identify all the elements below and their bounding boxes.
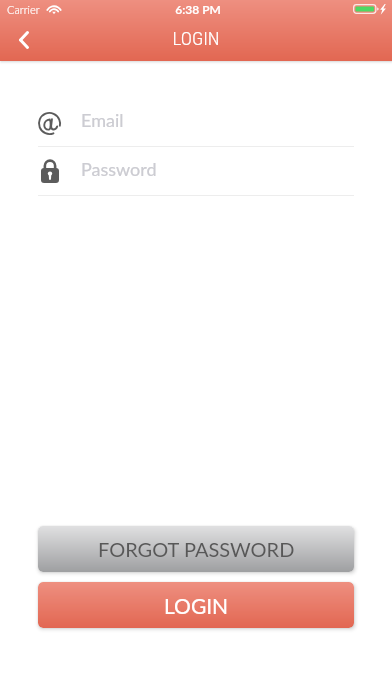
staticText: Password — [81, 158, 157, 180]
button[interactable]: Back — [4, 21, 44, 59]
staticText: 6:38 PM — [2, 2, 392, 16]
staticText: LOGIN — [0, 27, 392, 49]
button[interactable]: Email — [38, 108, 354, 147]
staticText: FORGOT PASSWORD — [98, 537, 295, 561]
staticText: LOGIN — [164, 593, 229, 618]
button[interactable]: FORGOT PASSWORD — [38, 526, 354, 572]
staticText: Email — [81, 109, 124, 131]
button[interactable]: Password — [38, 157, 354, 196]
staticText: Carrier — [7, 3, 40, 16]
button[interactable]: LOGIN — [38, 582, 354, 628]
